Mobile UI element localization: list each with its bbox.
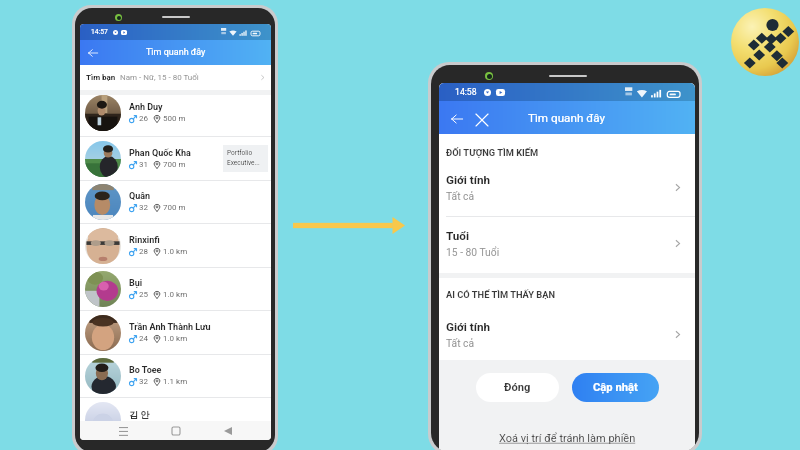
staticText: Giới tính bbox=[446, 320, 491, 334]
staticText: Nam - Nữ, 15 - 80 Tuổi bbox=[120, 73, 199, 82]
button[interactable]: Tuổi bbox=[439, 215, 695, 271]
staticText: Cập nhật bbox=[593, 381, 638, 394]
staticText: 김 안 bbox=[129, 409, 150, 420]
button[interactable]: 김 안 bbox=[80, 398, 271, 440]
staticText: Anh Duy bbox=[129, 102, 163, 113]
staticText: 14:58 bbox=[455, 87, 477, 97]
button[interactable]: Anh Duy bbox=[80, 92, 271, 133]
staticText: 32 bbox=[139, 203, 148, 212]
button[interactable]: Bụi bbox=[80, 267, 271, 310]
staticText: Trần Anh Thành Lưu bbox=[129, 322, 211, 333]
staticText: Phan Quốc Kha bbox=[129, 148, 191, 159]
staticText: 1.1 km bbox=[163, 377, 188, 386]
button[interactable]: Recent apps bbox=[114, 422, 132, 440]
staticText: Tìm bạn bbox=[86, 73, 116, 82]
button[interactable]: Bo Toee bbox=[80, 354, 271, 397]
staticText: 1.0 km bbox=[163, 334, 188, 343]
staticText: Tìm quanh đây bbox=[146, 47, 206, 58]
staticText: 26 bbox=[139, 114, 148, 123]
staticText: Bụi bbox=[129, 278, 143, 289]
staticText: 32 bbox=[139, 377, 148, 386]
button[interactable]: Giới tính bbox=[439, 161, 695, 213]
staticText: 15 - 80 Tuổi bbox=[446, 246, 500, 258]
button[interactable]: Quân bbox=[80, 180, 271, 223]
button[interactable]: Trần Anh Thành Lưu bbox=[80, 311, 271, 354]
staticText: 1.0 km bbox=[163, 247, 188, 256]
staticText: 28 bbox=[139, 247, 148, 256]
button[interactable]: Đóng bbox=[476, 373, 559, 402]
staticText: 31 bbox=[139, 160, 148, 169]
button[interactable]: Cập nhật bbox=[572, 373, 659, 402]
staticText: Quân bbox=[129, 191, 151, 202]
staticText: Tất cả bbox=[446, 337, 475, 349]
button[interactable]: Back bbox=[82, 42, 104, 64]
staticText: 24 bbox=[139, 334, 148, 343]
staticText: 1.0 km bbox=[163, 290, 188, 299]
staticText: 25 bbox=[139, 290, 148, 299]
staticText: 14:57 bbox=[91, 28, 108, 36]
button[interactable]: Xoá vị trí để tránh làm phiền bbox=[499, 432, 636, 445]
button[interactable]: Home bbox=[167, 422, 185, 440]
staticText: Tất cả bbox=[446, 190, 475, 202]
button[interactable]: Back bbox=[219, 422, 237, 440]
staticText: Portfolio Executive... bbox=[227, 149, 260, 167]
staticText: Tuổi bbox=[446, 229, 470, 243]
staticText: Tìm quanh đây bbox=[528, 111, 606, 125]
staticText: Đóng bbox=[504, 381, 531, 394]
button[interactable]: Tìm bạn bbox=[80, 65, 271, 90]
staticText: 500 m bbox=[163, 114, 186, 123]
staticText: Giới tính bbox=[446, 173, 491, 187]
button[interactable]: Close bbox=[470, 108, 494, 132]
button[interactable]: Giới tính bbox=[439, 308, 695, 360]
button[interactable]: Rinxinfi bbox=[80, 224, 271, 267]
staticText: 700 m bbox=[163, 203, 186, 212]
staticText: 1.1 km bbox=[163, 421, 188, 430]
button[interactable]: Back bbox=[445, 107, 469, 131]
staticText: Rinxinfi bbox=[129, 235, 160, 246]
staticText: ĐỐI TƯỢNG TÌM KIẾM bbox=[446, 147, 539, 158]
button[interactable]: Phan Quốc Kha bbox=[80, 137, 271, 180]
staticText: AI CÓ THỂ TÌM THẤY BẠN bbox=[446, 289, 556, 300]
staticText: Bo Toee bbox=[129, 365, 162, 376]
staticText: 700 m bbox=[163, 160, 186, 169]
